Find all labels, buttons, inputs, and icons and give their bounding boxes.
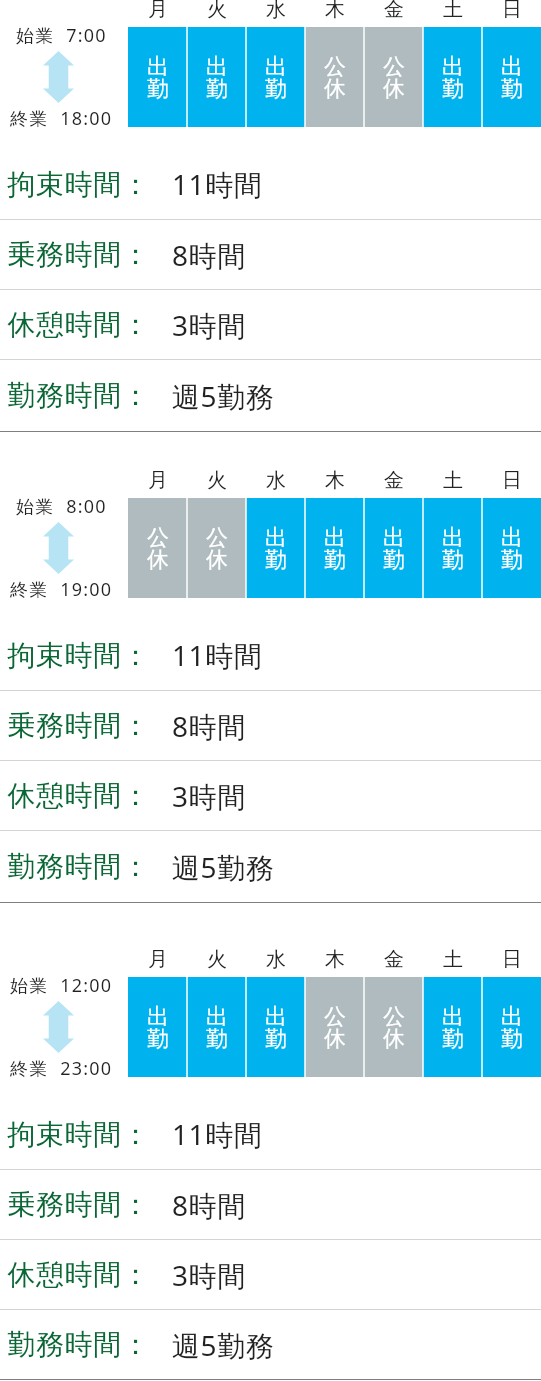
button[interactable]: 勤務時間： — [0, 831, 541, 902]
button[interactable]: 出 勤 — [128, 977, 187, 1077]
staticText: 金 — [384, 947, 404, 972]
staticText: 8時間 — [172, 707, 246, 745]
button[interactable]: 拘束時間： — [0, 620, 541, 690]
button[interactable]: 公 休 — [364, 27, 423, 127]
staticText: 日 — [502, 0, 522, 22]
staticText: 3時間 — [172, 1256, 246, 1294]
staticText: 土 — [443, 468, 463, 493]
button[interactable]: 出 勤 — [482, 977, 541, 1077]
staticText: 休憩時間： — [7, 1257, 150, 1292]
staticText: 11時間 — [172, 1115, 263, 1153]
button[interactable]: 乗務時間： — [0, 1170, 541, 1239]
staticText: 公 休 — [383, 53, 405, 103]
button[interactable]: 出 勤 — [305, 498, 364, 598]
button[interactable]: 出 勤 — [246, 977, 305, 1077]
staticText: 公 休 — [206, 524, 228, 574]
staticText: 出 勤 — [265, 1003, 287, 1053]
staticText: 休憩時間： — [7, 778, 150, 813]
button[interactable]: 出 勤 — [128, 27, 187, 127]
button[interactable]: 勤務時間： — [0, 360, 541, 431]
button[interactable]: 乗務時間： — [0, 220, 541, 289]
staticText: 金 — [384, 468, 404, 493]
staticText: 土 — [443, 947, 463, 972]
staticText: 日 — [502, 947, 522, 972]
staticText: 出 勤 — [442, 1003, 464, 1053]
staticText: 月 — [148, 468, 168, 493]
staticText: 休憩時間： — [7, 307, 150, 342]
staticText: 出 勤 — [383, 524, 405, 574]
staticText: 終業 23:00 — [10, 1056, 113, 1081]
button[interactable]: 公 休 — [128, 498, 187, 598]
staticText: 出 勤 — [442, 524, 464, 574]
staticText: 木 — [325, 468, 345, 493]
staticText: 出 勤 — [265, 524, 287, 574]
staticText: 拘束時間： — [7, 638, 150, 673]
staticText: 火 — [207, 0, 227, 22]
other: Working hours span — [43, 1001, 74, 1053]
button[interactable]: 出 勤 — [246, 498, 305, 598]
staticText: 出 勤 — [442, 53, 464, 103]
button[interactable]: 公 休 — [187, 498, 246, 598]
staticText: 水 — [266, 0, 286, 22]
button[interactable]: 出 勤 — [482, 27, 541, 127]
staticText: 始業 12:00 — [10, 973, 113, 998]
staticText: 月 — [148, 947, 168, 972]
button[interactable]: 出 勤 — [423, 27, 482, 127]
staticText: 火 — [207, 468, 227, 493]
staticText: 出 勤 — [324, 524, 346, 574]
button[interactable]: 公 休 — [305, 977, 364, 1077]
button[interactable]: 出 勤 — [187, 977, 246, 1077]
button[interactable]: 出 勤 — [364, 498, 423, 598]
staticText: 3時間 — [172, 306, 246, 344]
staticText: 出 勤 — [501, 1003, 523, 1053]
staticText: 8時間 — [172, 1186, 246, 1224]
staticText: 終業 18:00 — [10, 106, 113, 131]
staticText: 8時間 — [172, 236, 246, 274]
other: Working hours span — [43, 51, 74, 103]
button[interactable]: 休憩時間： — [0, 1240, 541, 1309]
button[interactable]: 出 勤 — [423, 977, 482, 1077]
staticText: 11時間 — [172, 165, 263, 203]
staticText: 勤務時間： — [7, 378, 150, 413]
staticText: 土 — [443, 0, 463, 22]
staticText: 週5勤務 — [172, 848, 275, 886]
staticText: 水 — [266, 468, 286, 493]
staticText: 拘束時間： — [7, 1117, 150, 1152]
button[interactable]: 拘束時間： — [0, 1099, 541, 1169]
button[interactable]: 公 休 — [364, 977, 423, 1077]
button[interactable]: 拘束時間： — [0, 149, 541, 219]
staticText: 日 — [502, 468, 522, 493]
staticText: 始業 8:00 — [16, 494, 107, 519]
staticText: 11時間 — [172, 636, 263, 674]
button[interactable]: 公 休 — [305, 27, 364, 127]
button[interactable]: 休憩時間： — [0, 761, 541, 830]
button[interactable]: 出 勤 — [187, 27, 246, 127]
other: Working hours span — [43, 522, 74, 574]
staticText: 拘束時間： — [7, 167, 150, 202]
staticText: 週5勤務 — [172, 1326, 275, 1364]
staticText: 木 — [325, 947, 345, 972]
button[interactable]: 出 勤 — [423, 498, 482, 598]
staticText: 乗務時間： — [7, 237, 150, 272]
staticText: 出 勤 — [265, 53, 287, 103]
staticText: 水 — [266, 947, 286, 972]
staticText: 火 — [207, 947, 227, 972]
staticText: 出 勤 — [147, 1003, 169, 1053]
button[interactable]: 勤務時間： — [0, 1310, 541, 1379]
staticText: 月 — [148, 0, 168, 22]
staticText: 公 休 — [324, 53, 346, 103]
button[interactable]: 出 勤 — [246, 27, 305, 127]
button[interactable]: 出 勤 — [482, 498, 541, 598]
staticText: 乗務時間： — [7, 1187, 150, 1222]
staticText: 木 — [325, 0, 345, 22]
staticText: 週5勤務 — [172, 377, 275, 415]
staticText: 終業 19:00 — [10, 577, 113, 602]
staticText: 公 休 — [324, 1003, 346, 1053]
staticText: 勤務時間： — [7, 849, 150, 884]
staticText: 始業 7:00 — [16, 23, 107, 48]
staticText: 出 勤 — [501, 524, 523, 574]
button[interactable]: 休憩時間： — [0, 290, 541, 359]
staticText: 3時間 — [172, 777, 246, 815]
staticText: 出 勤 — [501, 53, 523, 103]
button[interactable]: 乗務時間： — [0, 691, 541, 760]
